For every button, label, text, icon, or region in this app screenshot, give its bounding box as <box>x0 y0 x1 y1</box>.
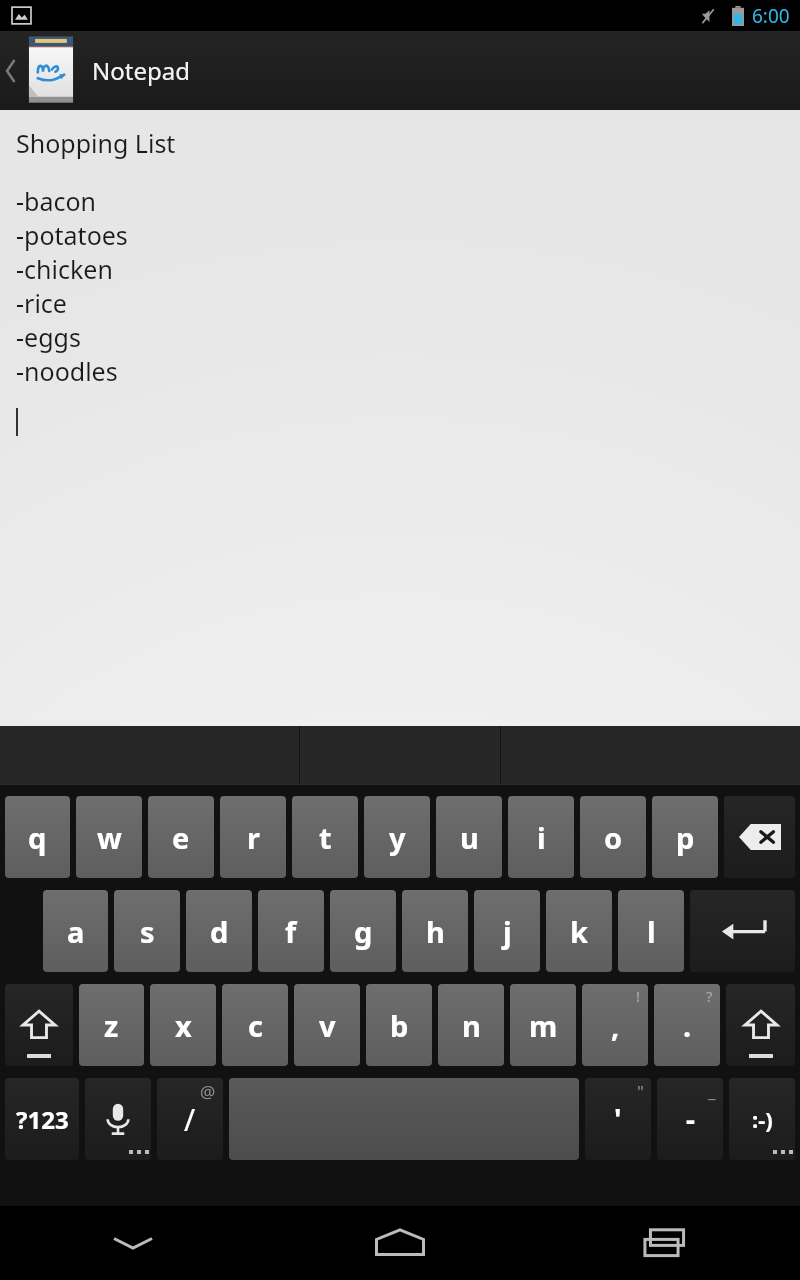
staticText: n <box>462 1006 481 1045</box>
button[interactable]: Symbols <box>5 1078 79 1160</box>
button[interactable]: v <box>294 984 360 1066</box>
button[interactable]: o <box>580 796 646 878</box>
button[interactable]: j <box>474 890 540 972</box>
button[interactable]: . <box>654 984 720 1066</box>
button[interactable]: e <box>148 796 214 878</box>
staticText: y <box>389 818 406 857</box>
button[interactable]: Space <box>229 1078 579 1160</box>
button[interactable]: d <box>186 890 252 972</box>
button[interactable]: x <box>150 984 216 1066</box>
staticText: k <box>570 912 588 951</box>
staticText: s <box>140 912 155 951</box>
staticText: @ <box>200 1080 216 1103</box>
button[interactable]: Apostrophe <box>585 1078 651 1160</box>
button[interactable]: u <box>436 796 502 878</box>
staticText: o <box>604 818 623 857</box>
staticText: q <box>28 818 47 857</box>
staticText: z <box>104 1006 119 1045</box>
staticText: 6:00 <box>752 3 790 29</box>
button[interactable]: q <box>5 796 70 878</box>
button[interactable]: m <box>510 984 576 1066</box>
staticText: _ <box>708 1080 716 1103</box>
button[interactable]: a <box>43 890 108 972</box>
button[interactable]: Emoticon <box>729 1078 795 1160</box>
staticText: t <box>319 818 332 857</box>
button[interactable]: Notepad <box>0 31 800 110</box>
button[interactable]: p <box>652 796 718 878</box>
button[interactable]: Backspace <box>724 796 795 878</box>
button[interactable]: z <box>79 984 144 1066</box>
button[interactable]: l <box>618 890 684 972</box>
staticText: p <box>676 818 695 857</box>
staticText: Notepad <box>92 54 190 87</box>
button[interactable]: Shopping List <box>0 110 800 726</box>
staticText: b <box>390 1006 409 1045</box>
staticText: g <box>354 912 373 951</box>
staticText: / <box>184 1099 196 1140</box>
staticText: e <box>172 818 190 857</box>
staticText: j <box>503 912 512 951</box>
button[interactable]: y <box>364 796 430 878</box>
button[interactable]: Enter <box>690 890 795 972</box>
button[interactable]: Shift <box>5 984 73 1066</box>
staticText: x <box>175 1006 192 1045</box>
button[interactable]: c <box>222 984 288 1066</box>
button[interactable]: s <box>114 890 180 972</box>
button[interactable]: n <box>438 984 504 1066</box>
staticText: v <box>319 1006 336 1045</box>
staticText: " <box>637 1080 644 1103</box>
staticText: ' <box>614 1100 622 1138</box>
staticText: -rice <box>16 286 67 320</box>
staticText: Shopping List <box>16 126 176 160</box>
staticText: ?123 <box>16 1103 69 1136</box>
staticText: w <box>97 818 122 857</box>
button[interactable]: Home <box>266 1206 533 1280</box>
button[interactable]: Recent apps <box>533 1206 800 1280</box>
staticText: u <box>460 818 479 857</box>
button[interactable]: Dash <box>657 1078 723 1160</box>
staticText: -chicken <box>16 252 113 286</box>
staticText: l <box>647 912 656 951</box>
staticText: :-) <box>752 1104 773 1134</box>
button[interactable]: , <box>582 984 648 1066</box>
button[interactable]: b <box>366 984 432 1066</box>
staticText: -noodles <box>16 354 118 388</box>
button[interactable]: t <box>292 796 358 878</box>
staticText: c <box>248 1006 263 1045</box>
staticText: , <box>611 1006 620 1045</box>
staticText: . <box>683 1006 692 1045</box>
staticText: i <box>537 818 546 857</box>
button[interactable]: Hide keyboard <box>0 1206 266 1280</box>
button[interactable]: w <box>76 796 142 878</box>
button[interactable]: g <box>330 890 396 972</box>
staticText: m <box>529 1006 558 1045</box>
staticText: r <box>247 818 260 857</box>
staticText: -potatoes <box>16 218 128 252</box>
button[interactable]: k <box>546 890 612 972</box>
button[interactable]: h <box>402 890 468 972</box>
button[interactable]: f <box>258 890 324 972</box>
button[interactable]: Slash <box>157 1078 223 1160</box>
staticText: ? <box>706 986 713 1006</box>
button[interactable]: Shift <box>726 984 795 1066</box>
button[interactable]: Voice input <box>85 1078 151 1160</box>
staticText: a <box>67 912 85 951</box>
staticText: h <box>426 912 445 951</box>
staticText: - <box>686 1100 695 1138</box>
button[interactable]: r <box>220 796 286 878</box>
staticText: -eggs <box>16 320 81 354</box>
staticText: d <box>210 912 229 951</box>
staticText: f <box>285 912 297 951</box>
button[interactable]: i <box>508 796 574 878</box>
staticText: -bacon <box>16 184 97 218</box>
staticText: ! <box>636 986 641 1006</box>
